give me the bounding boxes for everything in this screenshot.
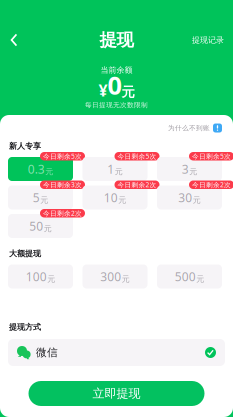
staticText: 今日剩余5次 — [117, 152, 156, 161]
button[interactable]: 5 — [8, 180, 73, 209]
staticText: 元 — [121, 84, 134, 100]
staticText: 元 — [118, 195, 126, 205]
staticText: 为什么不到账 — [168, 124, 210, 132]
staticText: 元 — [45, 167, 53, 176]
staticText: 5 — [33, 189, 40, 205]
button[interactable]: 微信 — [8, 339, 225, 366]
staticText: 元 — [115, 167, 123, 176]
staticText: 今日剩余2次 — [192, 180, 231, 189]
staticText: 大额提现 — [9, 249, 41, 258]
staticText: 今日剩余5次 — [43, 152, 82, 161]
staticText: 今日剩余5次 — [192, 152, 231, 161]
staticText: 10 — [104, 189, 118, 205]
button[interactable]: 30 — [157, 180, 222, 209]
staticText: 元 — [40, 195, 48, 205]
staticText: 元 — [193, 195, 201, 205]
button[interactable]: 为什么不到账 — [168, 121, 233, 135]
button[interactable]: 0.3 — [8, 152, 73, 180]
staticText: 30 — [178, 189, 192, 205]
button[interactable]: 100 — [8, 259, 73, 288]
staticText: 1 — [107, 161, 114, 177]
button[interactable]: 300 — [82, 259, 147, 288]
button[interactable]: 3 — [157, 152, 222, 180]
staticText: 0 — [107, 68, 121, 102]
staticText: 每日提现无次数限制 — [85, 101, 148, 109]
staticText: 100 — [26, 268, 47, 284]
button[interactable]: 10 — [82, 180, 147, 209]
staticText: 新人专享 — [9, 141, 41, 151]
staticText: 立即提现 — [92, 386, 140, 401]
staticText: 元 — [47, 274, 55, 284]
staticText: 提现方式 — [9, 322, 41, 332]
staticText: 0.3 — [28, 161, 45, 177]
staticText: ¥ — [98, 80, 107, 101]
staticText: 今日剩余2次 — [43, 209, 82, 218]
staticText: 今日剩余3次 — [43, 180, 82, 189]
staticText: 元 — [189, 167, 197, 176]
staticText: 提现 — [99, 29, 133, 51]
staticText: 提现记录 — [192, 35, 224, 45]
button[interactable]: 50 — [8, 209, 73, 237]
staticText: 元 — [122, 274, 130, 284]
button[interactable]: 立即提现 — [28, 381, 204, 406]
staticText: 今日剩余2次 — [117, 180, 156, 189]
button[interactable]: 500 — [157, 259, 222, 288]
staticText: 50 — [29, 218, 43, 234]
button[interactable]: 提现记录 — [190, 27, 226, 53]
staticText: 300 — [100, 268, 121, 284]
staticText: 当前余额 — [100, 65, 132, 75]
staticText: 微信 — [36, 346, 58, 359]
button[interactable]: 1 — [82, 152, 147, 180]
staticText: 元 — [196, 274, 204, 284]
staticText: 500 — [175, 268, 196, 284]
staticText: 3 — [182, 161, 189, 177]
staticText: 元 — [44, 224, 52, 233]
button[interactable]: Back — [1, 27, 27, 53]
